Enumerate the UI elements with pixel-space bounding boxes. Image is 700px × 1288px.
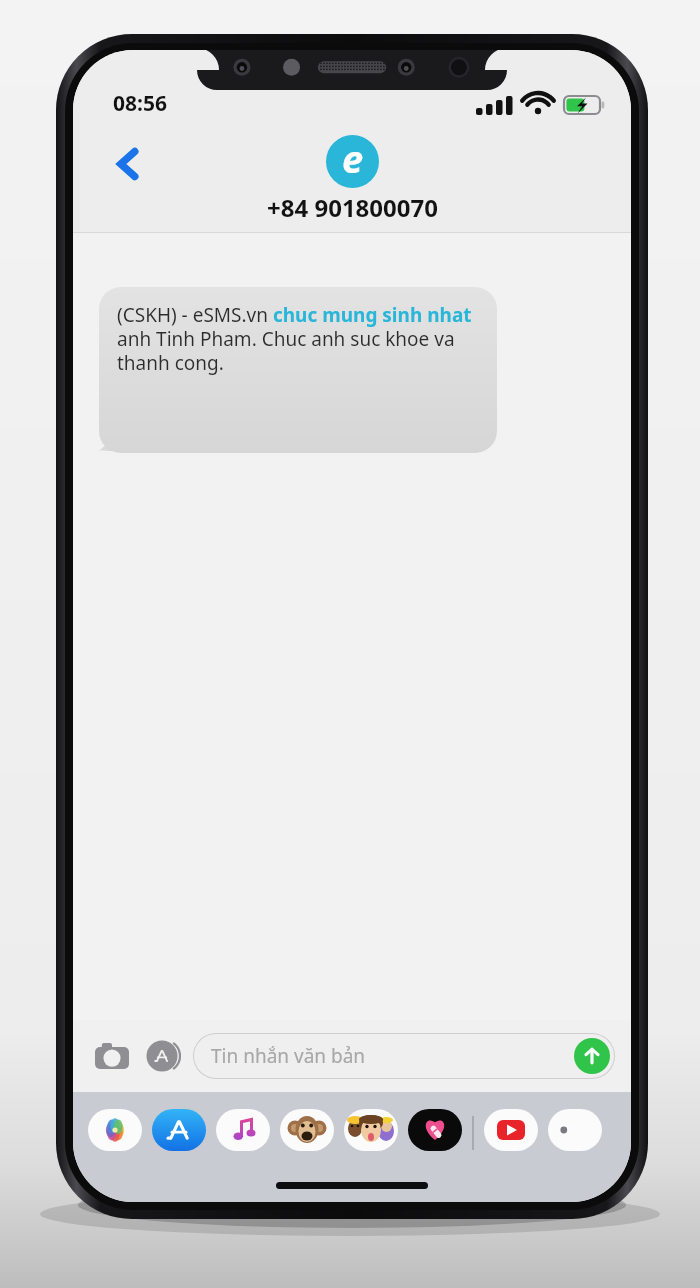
- staticText: Tin nhắn văn bản: [211, 1043, 366, 1069]
- staticText: e: [342, 135, 364, 184]
- staticText: (CSKH) - eSMS.vn chuc mung sinh nhat anh…: [117, 302, 483, 375]
- button[interactable]: YouTube: [483, 1108, 539, 1152]
- button[interactable]: Send: [574, 1038, 610, 1074]
- button[interactable]: Contact avatar: [326, 135, 379, 188]
- button[interactable]: Memoji stickers: [343, 1108, 399, 1152]
- button[interactable]: Music: [215, 1108, 271, 1152]
- button[interactable]: Photos: [87, 1108, 143, 1152]
- staticText: 08:56: [113, 89, 167, 118]
- staticText: +84 901800070: [267, 191, 438, 224]
- button[interactable]: Camera: [89, 1033, 135, 1079]
- button[interactable]: More: [547, 1108, 603, 1152]
- button[interactable]: Digital Touch: [407, 1108, 463, 1152]
- button[interactable]: Tin nhắn văn bản: [193, 1033, 615, 1079]
- button[interactable]: App Store: [151, 1108, 207, 1152]
- button[interactable]: Monkey sticker: [279, 1108, 335, 1152]
- button[interactable]: App Store: [139, 1033, 185, 1079]
- button[interactable]: Back: [105, 140, 153, 188]
- button[interactable]: (CSKH) - eSMS.vn chuc mung sinh nhat anh…: [99, 287, 497, 453]
